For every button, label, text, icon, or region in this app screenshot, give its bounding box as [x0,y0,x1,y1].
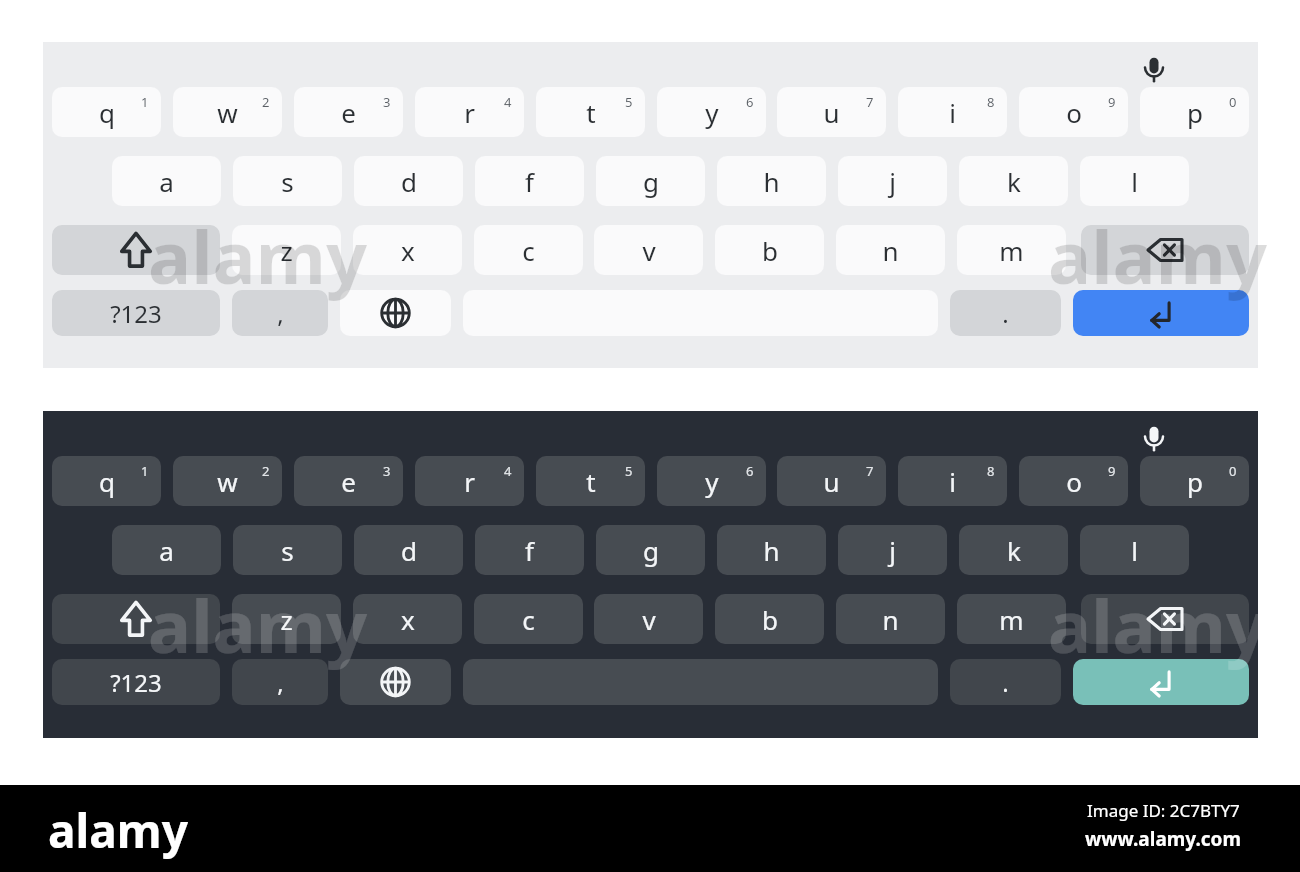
button[interactable]: d [354,156,463,206]
button[interactable]: y [657,456,766,506]
button[interactable]: g [596,525,705,575]
staticText: 4 [504,93,512,111]
staticText: u [823,95,840,130]
staticText: 2 [262,462,270,480]
staticText: 0 [1229,93,1237,111]
staticText: 2 [262,93,270,111]
button[interactable]: Change language [340,659,451,705]
button[interactable]: s [233,525,342,575]
button[interactable]: h [717,525,826,575]
button[interactable]: d [354,525,463,575]
button[interactable]: Shift [52,594,220,644]
staticText: w [217,464,238,499]
button[interactable]: Enter [1073,659,1249,705]
staticText: n [882,233,899,268]
button[interactable]: q [52,87,161,137]
button[interactable]: b [715,594,824,644]
staticText: a [159,533,174,568]
button[interactable]: o [1019,87,1128,137]
button[interactable]: y [657,87,766,137]
button[interactable]: b [715,225,824,275]
button[interactable]: q [52,456,161,506]
button[interactable]: Delete [1081,225,1249,275]
staticText: 8 [987,93,995,111]
button[interactable]: . [950,290,1061,336]
staticText: p [1187,95,1203,130]
staticText: r [464,95,475,130]
staticText: d [401,533,417,568]
button[interactable]: Enter [1073,290,1249,336]
button[interactable]: x [353,225,462,275]
button[interactable]: Delete [1081,594,1249,644]
staticText: Image ID: 2C7BTY7 [1087,799,1240,822]
button[interactable]: i [898,87,1007,137]
button[interactable]: c [474,225,583,275]
button[interactable]: j [838,525,947,575]
button[interactable]: w [173,456,282,506]
button[interactable]: , [232,290,328,336]
button[interactable]: i [898,456,1007,506]
button[interactable]: x [353,594,462,644]
staticText: www.alamy.com [1085,826,1241,852]
staticText: i [949,95,956,130]
staticText: j [889,164,896,199]
button[interactable]: Voice input [1130,48,1178,92]
button[interactable]: j [838,156,947,206]
staticText: g [643,164,659,199]
button[interactable]: z [232,594,341,644]
button[interactable]: r [415,87,524,137]
button[interactable]: t [536,87,645,137]
button[interactable]: p [1140,87,1249,137]
button[interactable]: n [836,594,945,644]
staticText: m [999,233,1024,268]
staticText: b [762,602,778,637]
button[interactable]: u [777,87,886,137]
button[interactable]: l [1080,525,1189,575]
button[interactable]: c [474,594,583,644]
button[interactable]: a [112,525,221,575]
button[interactable]: w [173,87,282,137]
button[interactable]: o [1019,456,1128,506]
button[interactable]: m [957,225,1066,275]
button[interactable]: n [836,225,945,275]
button[interactable]: k [959,156,1068,206]
staticText: . [1002,297,1009,330]
button[interactable]: z [232,225,341,275]
button[interactable]: t [536,456,645,506]
button[interactable]: k [959,525,1068,575]
button[interactable]: a [112,156,221,206]
staticText: w [217,95,238,130]
button[interactable]: v [594,225,703,275]
button[interactable]: l [1080,156,1189,206]
button[interactable]: Voice input [1130,417,1178,461]
button[interactable]: p [1140,456,1249,506]
button[interactable]: u [777,456,886,506]
button[interactable]: ?123 [52,659,220,705]
button[interactable]: . [950,659,1061,705]
button[interactable]: Change language [340,290,451,336]
staticText: 0 [1229,462,1237,480]
button[interactable]: r [415,456,524,506]
staticText: f [525,164,534,199]
staticText: i [949,464,956,499]
button[interactable]: m [957,594,1066,644]
staticText: u [823,464,840,499]
staticText: b [762,233,778,268]
button[interactable]: e [294,456,403,506]
button[interactable]: f [475,525,584,575]
staticText: k [1007,533,1021,568]
button[interactable]: f [475,156,584,206]
button[interactable]: ?123 [52,290,220,336]
button[interactable]: , [232,659,328,705]
button[interactable]: s [233,156,342,206]
button[interactable]: h [717,156,826,206]
button[interactable]: e [294,87,403,137]
button[interactable]: v [594,594,703,644]
staticText: 1 [141,462,149,480]
staticText: z [280,233,293,268]
button[interactable]: Shift [52,225,220,275]
staticText: 5 [625,93,633,111]
button[interactable]: g [596,156,705,206]
